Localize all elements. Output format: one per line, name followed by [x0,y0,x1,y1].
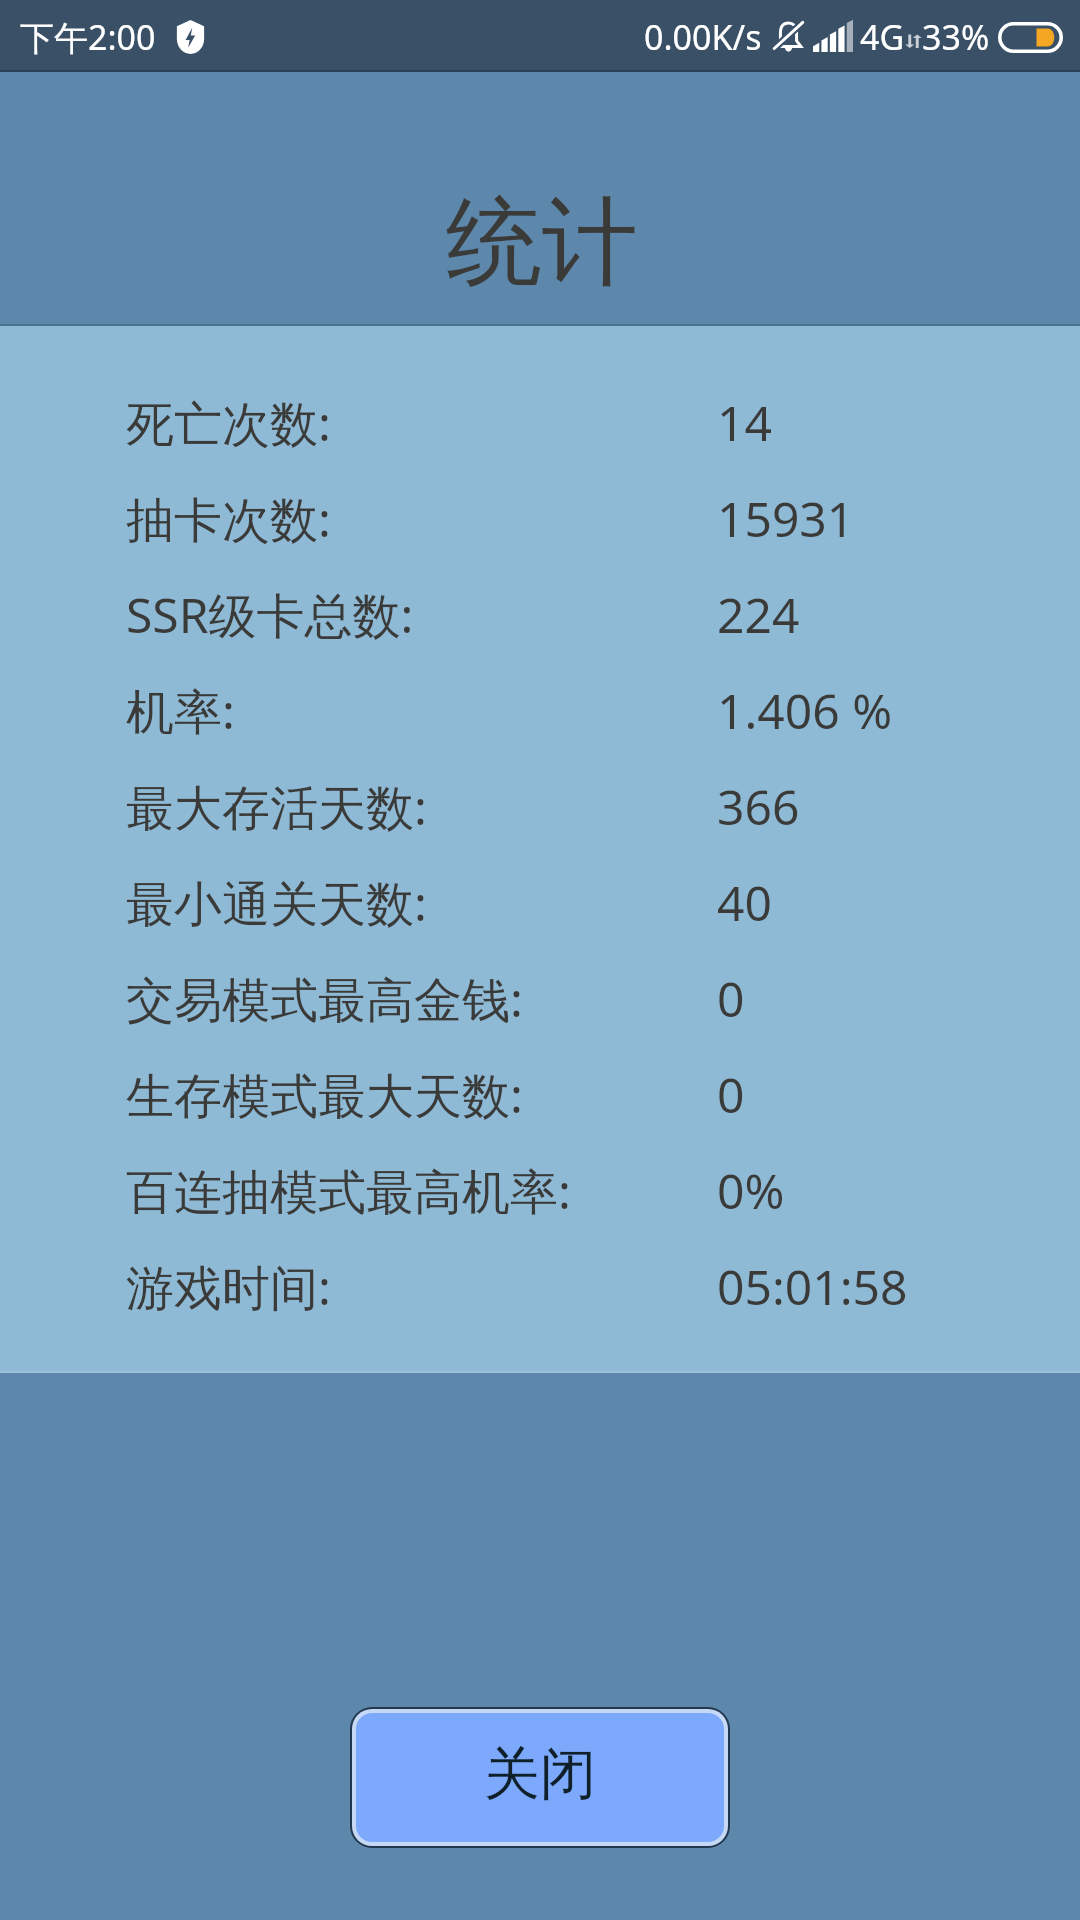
staticText: 224 [717,582,800,647]
staticText: 生存模式最大天数: [126,1062,523,1128]
other: Battery 33 percent [998,22,1063,53]
staticText: 下午2:00 [20,14,156,60]
other: Security protection active [176,19,205,55]
staticText: 15931 [717,486,855,551]
staticText: 40 [717,870,772,935]
other: Signal strength [813,23,853,52]
staticText: 抽卡次数: [126,486,331,552]
staticText: 4G [860,14,905,60]
staticText: 05:01:58 [717,1254,908,1319]
other: Notifications silenced [773,21,804,53]
staticText: 366 [717,774,800,839]
staticText: 0 [717,966,745,1031]
button[interactable]: 关闭 [356,1713,724,1842]
staticText: 最大存活天数: [126,774,427,840]
staticText: 0 [717,1062,745,1127]
staticText: 33% [922,14,990,60]
staticText: 统计 [446,183,638,304]
staticText: 0% [717,1158,785,1223]
staticText: 死亡次数: [126,390,331,456]
staticText: 14 [717,390,772,455]
staticText: SSR级卡总数: [126,582,414,648]
staticText: 机率: [126,678,235,744]
staticText: 交易模式最高金钱: [126,966,523,1032]
staticText: 1.406 % [717,678,893,743]
staticText: 最小通关天数: [126,870,427,936]
staticText: 关闭 [484,1739,596,1810]
staticText: 百连抽模式最高机率: [126,1158,571,1224]
staticText: 0.00K/s [644,14,762,60]
other: Data transfer [905,22,922,64]
staticText: 游戏时间: [126,1254,331,1320]
